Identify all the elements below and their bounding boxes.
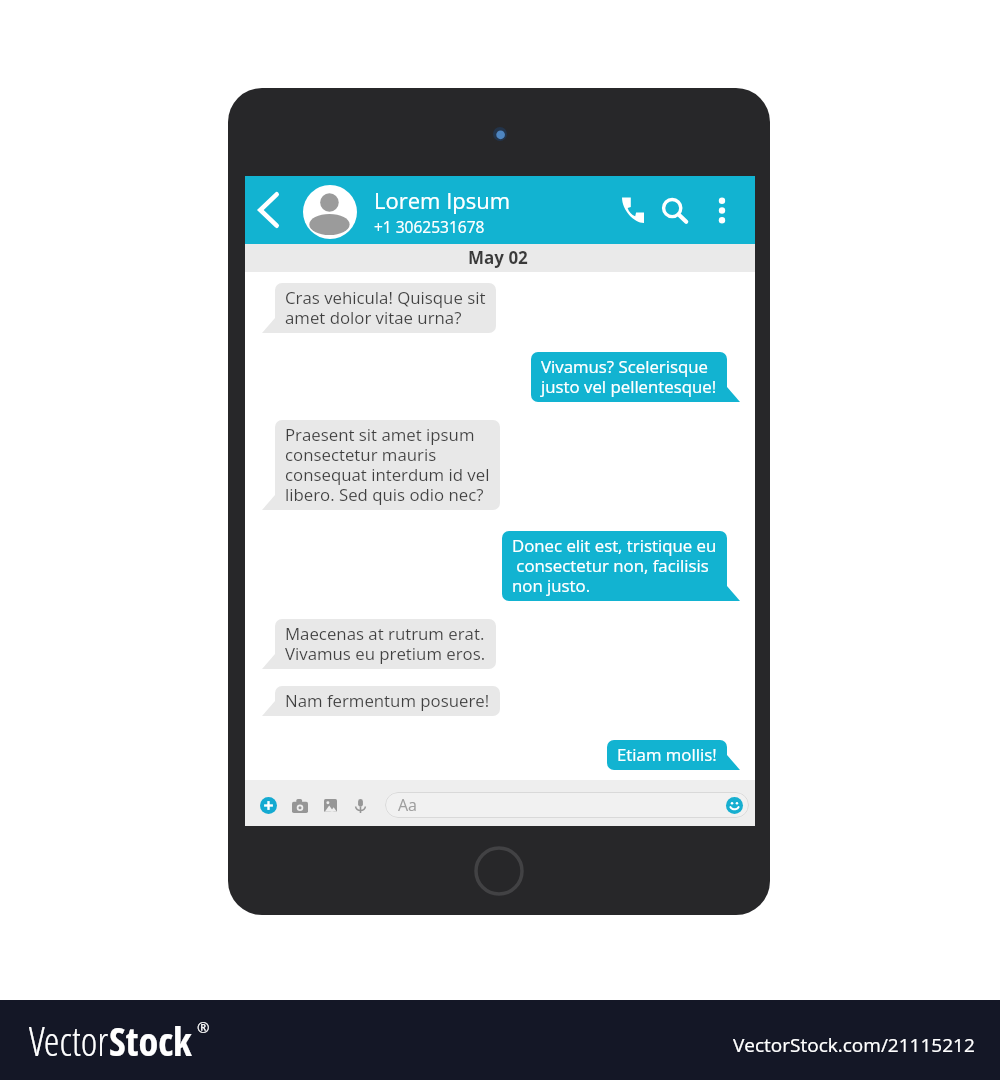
other: Emoji	[726, 797, 743, 814]
staticText: Nam fermentum posuere!	[285, 691, 490, 711]
staticText: ®	[197, 1017, 210, 1037]
staticText: VectorStock.com/21115212	[733, 1032, 975, 1058]
button[interactable]: Etiam mollis!	[607, 740, 727, 770]
staticText: Stock	[109, 1013, 192, 1067]
staticText: Donec elit est, tristique eu consectetur…	[512, 536, 717, 596]
staticText: Maecenas at rutrum erat. Vivamus eu pret…	[285, 624, 486, 664]
button[interactable]: Donec elit est, tristique eu consectetur…	[502, 531, 727, 601]
button[interactable]: Nam fermentum posuere!	[275, 686, 500, 716]
button[interactable]: Search	[653, 188, 697, 232]
staticText: Lorem Ipsum	[374, 185, 511, 215]
staticText: Aa	[398, 794, 418, 816]
button[interactable]: Voice message	[345, 790, 376, 821]
button[interactable]: Add attachment	[253, 790, 284, 821]
staticText: Praesent sit amet ipsum consectetur maur…	[285, 425, 490, 505]
button[interactable]: More options	[700, 188, 744, 232]
button[interactable]: Camera	[284, 790, 315, 821]
staticText: Cras vehicula! Quisque sit amet dolor vi…	[285, 288, 486, 328]
button[interactable]: Contact photo	[303, 185, 357, 239]
button[interactable]: Praesent sit amet ipsum consectetur maur…	[275, 420, 500, 510]
button[interactable]: Aa	[385, 792, 749, 818]
staticText: May 02	[468, 246, 528, 269]
button[interactable]: Vivamus? Scelerisque justo vel pellentes…	[531, 352, 727, 402]
button[interactable]: Cras vehicula! Quisque sit amet dolor vi…	[275, 283, 496, 333]
staticText: +1 3062531678	[374, 216, 485, 237]
button[interactable]: Back	[246, 184, 290, 236]
button[interactable]: Gallery	[315, 790, 346, 821]
staticText: Vivamus? Scelerisque justo vel pellentes…	[541, 357, 717, 397]
staticText: Vector	[29, 1013, 109, 1067]
staticText: Etiam mollis!	[617, 745, 717, 765]
button[interactable]: Maecenas at rutrum erat. Vivamus eu pret…	[275, 619, 496, 669]
button[interactable]: Call	[611, 188, 655, 232]
